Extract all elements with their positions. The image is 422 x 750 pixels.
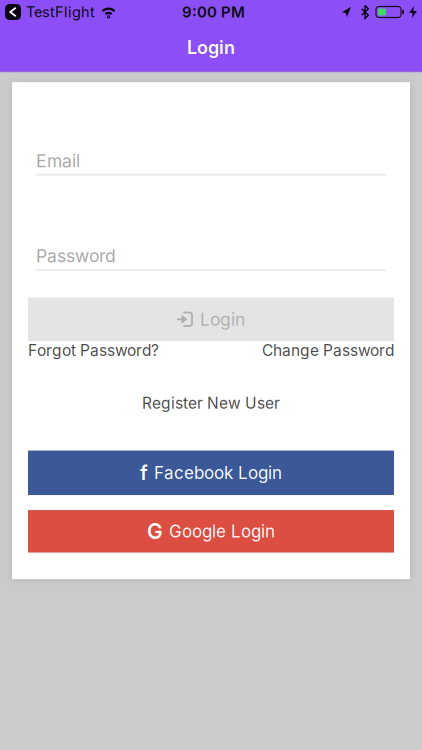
staticText: Login	[200, 309, 245, 330]
staticText: Register New User	[142, 394, 280, 413]
button[interactable]: Forgot Password?	[28, 341, 159, 360]
button[interactable]: Back to TestFlight	[0, 4, 21, 20]
button[interactable]: f	[28, 451, 394, 495]
button[interactable]: Login	[28, 297, 394, 341]
staticText: Password	[36, 245, 116, 267]
button[interactable]: Password	[36, 245, 386, 271]
staticText: Facebook Login	[154, 462, 282, 483]
staticText: 9:00 PM	[182, 3, 245, 21]
staticText: Login	[187, 37, 235, 58]
button[interactable]: G	[28, 510, 394, 553]
staticText: TestFlight	[26, 3, 95, 21]
staticText: Email	[36, 150, 80, 171]
staticText: G	[147, 519, 163, 544]
button[interactable]: Change Password	[262, 341, 394, 360]
staticText: Change Password	[262, 341, 394, 360]
staticText: f	[140, 461, 148, 485]
button[interactable]: Email	[36, 150, 386, 175]
staticText: Google Login	[169, 521, 275, 542]
button[interactable]: Register New User	[142, 394, 280, 413]
staticText: Forgot Password?	[28, 341, 159, 360]
